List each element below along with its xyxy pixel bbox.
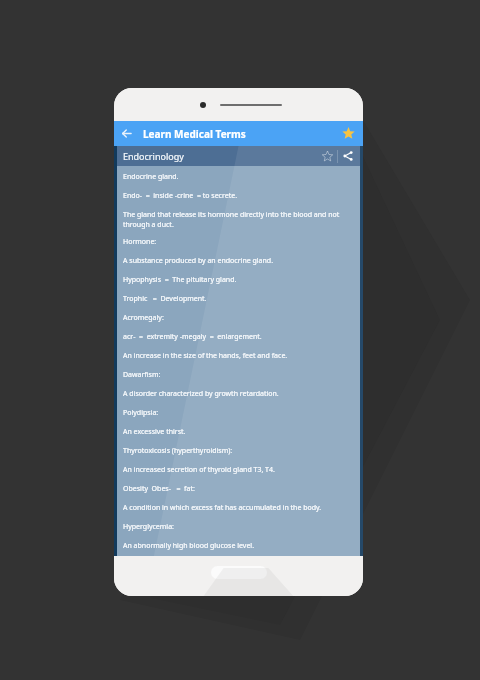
staticText: acr- = extremity -megaly = enlargement. xyxy=(123,332,262,342)
staticText: A disorder characterized by growth retar… xyxy=(123,389,279,399)
staticText: Polydipsia: xyxy=(123,408,159,418)
button[interactable]: A disorder characterized by growth retar… xyxy=(123,389,356,399)
button[interactable]: Share xyxy=(338,146,358,166)
staticText: Hormone: xyxy=(123,237,157,247)
button[interactable]: acr- = extremity -megaly = enlargement. xyxy=(123,332,356,342)
button[interactable]: An increase in the size of the hands, fe… xyxy=(123,351,356,361)
staticText: Hypophysis = The pituitary gland. xyxy=(123,275,237,285)
button[interactable]: An increased secretion of thyroid gland … xyxy=(123,465,356,475)
staticText: The gland that release its hormone direc… xyxy=(123,210,340,220)
staticText: Trophic = Development. xyxy=(123,294,207,304)
button[interactable]: A condition in which excess fat has accu… xyxy=(123,503,356,513)
button[interactable]: Add to favorites xyxy=(317,146,337,166)
button[interactable]: Polydipsia: xyxy=(123,408,356,418)
button[interactable]: Hormone: xyxy=(123,237,356,247)
staticText: An increased secretion of thyroid gland … xyxy=(123,465,275,475)
staticText: Endocrinology xyxy=(123,150,184,162)
staticText: A substance produced by an endocrine gla… xyxy=(123,256,274,266)
staticText: Hyperglycemia: xyxy=(123,522,174,532)
staticText: Endocrine gland. xyxy=(123,172,179,182)
staticText: Endo- = inside -crine = to secrete. xyxy=(123,191,238,201)
button[interactable]: Hyperglycemia: xyxy=(123,522,356,532)
staticText: A condition in which excess fat has accu… xyxy=(123,503,322,513)
button[interactable]: Endo- = inside -crine = to secrete. xyxy=(123,191,356,201)
button[interactable]: Acromegaly: xyxy=(123,313,356,323)
button[interactable]: Hypophysis = The pituitary gland. xyxy=(123,275,356,285)
button[interactable]: An abnormally high blood glucose level. xyxy=(123,541,356,551)
button[interactable]: Favorite xyxy=(336,121,361,146)
staticText: Thyrotoxicosis (hyperthyroidism): xyxy=(123,446,233,456)
staticText: An abnormally high blood glucose level. xyxy=(123,541,255,551)
staticText: Acromegaly: xyxy=(123,313,164,323)
staticText: Dawarfism: xyxy=(123,370,161,380)
button[interactable]: Endocrine gland. xyxy=(123,172,356,182)
button[interactable]: Obesity Obes- = fat: xyxy=(123,484,356,494)
staticText: through a duct. xyxy=(123,220,174,230)
button[interactable]: A substance produced by an endocrine gla… xyxy=(123,256,356,266)
staticText: An increase in the size of the hands, fe… xyxy=(123,351,288,361)
button[interactable]: Trophic = Development. xyxy=(123,294,356,304)
staticText: Learn Medical Terms xyxy=(143,127,246,141)
staticText: Obesity Obes- = fat: xyxy=(123,484,195,494)
button[interactable]: Dawarfism: xyxy=(123,370,356,380)
button[interactable]: Back xyxy=(114,121,139,146)
button[interactable]: An excessive thirst. xyxy=(123,427,356,437)
button[interactable]: Thyrotoxicosis (hyperthyroidism): xyxy=(123,446,356,456)
button[interactable]: The gland that release its hormone direc… xyxy=(123,210,356,230)
staticText: An excessive thirst. xyxy=(123,427,186,437)
